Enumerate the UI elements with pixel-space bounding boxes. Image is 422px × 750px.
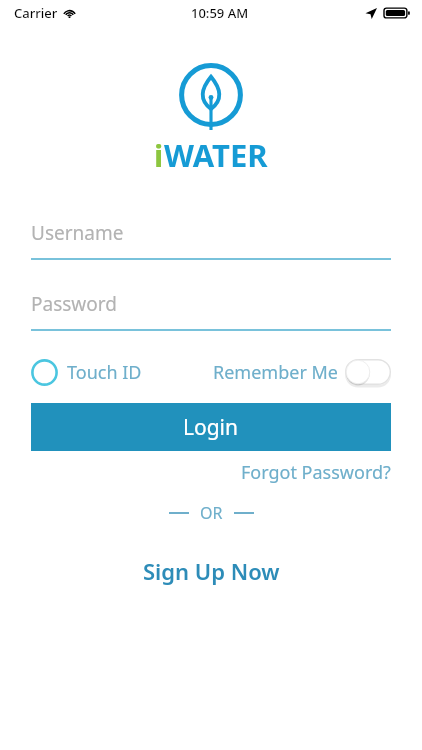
button[interactable]: Remember Me toggle (345, 359, 391, 385)
staticText: Sign Up Now (143, 556, 280, 586)
staticText: i (154, 134, 164, 176)
staticText: Username (31, 220, 124, 246)
staticText: WATER (164, 134, 268, 176)
button[interactable]: Login (31, 403, 391, 451)
staticText: OR (200, 502, 223, 524)
button[interactable]: Touch ID (31, 359, 142, 386)
button[interactable]: Username (31, 216, 391, 260)
button[interactable]: Password (31, 287, 391, 331)
button[interactable]: Remember Me (213, 359, 391, 385)
staticText: Login (183, 413, 239, 442)
button[interactable]: Forgot Password? (241, 457, 391, 488)
staticText: Forgot Password? (241, 460, 391, 485)
button[interactable]: Sign Up Now (127, 552, 296, 590)
staticText: Remember Me (213, 360, 338, 385)
staticText: Carrier (14, 4, 58, 22)
staticText: Password (31, 291, 117, 317)
staticText: 10:59 AM (191, 4, 249, 22)
staticText: Touch ID (67, 360, 142, 385)
